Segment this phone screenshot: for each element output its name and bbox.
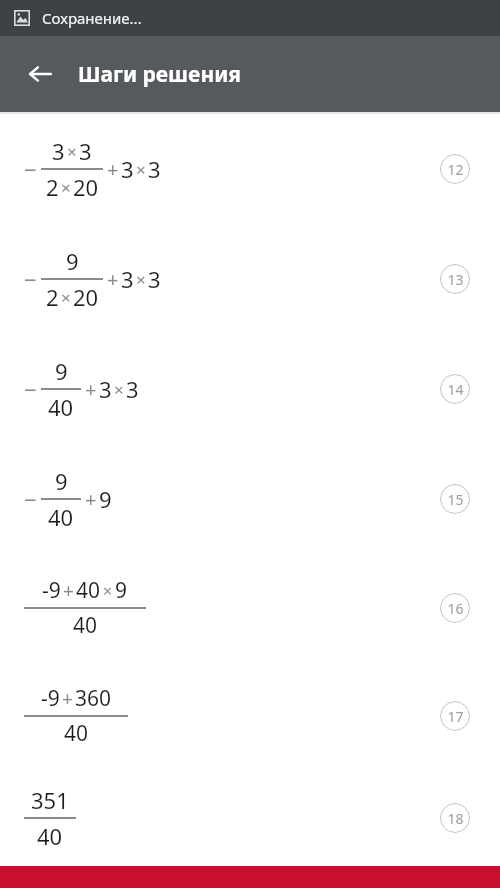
button[interactable]: Back — [16, 50, 64, 98]
staticText: − — [24, 154, 37, 184]
staticText: 40 — [37, 821, 63, 851]
staticText: × — [136, 158, 146, 181]
staticText: 40 — [76, 576, 101, 605]
staticText: × — [67, 140, 77, 163]
staticText: 3 — [121, 264, 134, 294]
staticText: + — [63, 578, 74, 604]
staticText: + — [62, 686, 73, 712]
staticText: 3 — [79, 136, 92, 166]
staticText: Сохранение... — [42, 8, 142, 28]
staticText: 351 — [31, 785, 69, 815]
staticText: 14 — [447, 380, 464, 399]
staticText: 3 — [126, 374, 139, 404]
staticText: − — [24, 374, 37, 404]
staticText: 20 — [73, 282, 99, 312]
staticText: + — [107, 156, 119, 183]
staticText: × — [136, 268, 146, 291]
staticText: 9 — [55, 466, 68, 496]
staticText: 9 — [66, 246, 79, 276]
staticText: − — [24, 484, 37, 514]
staticText: -9 — [42, 576, 61, 605]
staticText: 3 — [121, 154, 134, 184]
staticText: 3 — [148, 264, 161, 294]
staticText: + — [85, 486, 97, 513]
staticText: 9 — [115, 576, 128, 605]
staticText: 15 — [447, 490, 464, 509]
staticText: 40 — [73, 611, 98, 640]
staticText: 360 — [75, 684, 112, 713]
staticText: 12 — [447, 160, 464, 179]
staticText: × — [61, 176, 71, 199]
staticText: 3 — [52, 136, 65, 166]
staticText: 40 — [48, 502, 74, 532]
staticText: 2 — [46, 172, 59, 202]
staticText: 17 — [447, 707, 464, 726]
staticText: 20 — [73, 172, 99, 202]
staticText: × — [61, 286, 71, 309]
staticText: Шаги решения — [78, 60, 242, 89]
staticText: 9 — [55, 356, 68, 386]
staticText: 3 — [99, 374, 112, 404]
staticText: × — [103, 580, 113, 602]
staticText: 9 — [99, 484, 112, 514]
button[interactable]: -9 — [0, 662, 500, 770]
staticText: + — [107, 266, 119, 293]
button[interactable]: -9 — [0, 554, 500, 662]
staticText: 2 — [46, 282, 59, 312]
staticText: − — [24, 264, 37, 294]
button[interactable]: − — [0, 444, 500, 554]
staticText: 40 — [64, 719, 89, 748]
button[interactable]: 351 — [0, 770, 500, 866]
staticText: 13 — [447, 270, 464, 289]
staticText: + — [85, 376, 97, 403]
staticText: 18 — [447, 809, 464, 828]
staticText: × — [114, 378, 124, 401]
staticText: -9 — [41, 684, 60, 713]
staticText: 16 — [447, 599, 464, 618]
button[interactable]: − — [0, 334, 500, 444]
staticText: 40 — [48, 392, 74, 422]
button[interactable]: − — [0, 224, 500, 334]
staticText: 3 — [148, 154, 161, 184]
button[interactable]: − — [0, 114, 500, 224]
